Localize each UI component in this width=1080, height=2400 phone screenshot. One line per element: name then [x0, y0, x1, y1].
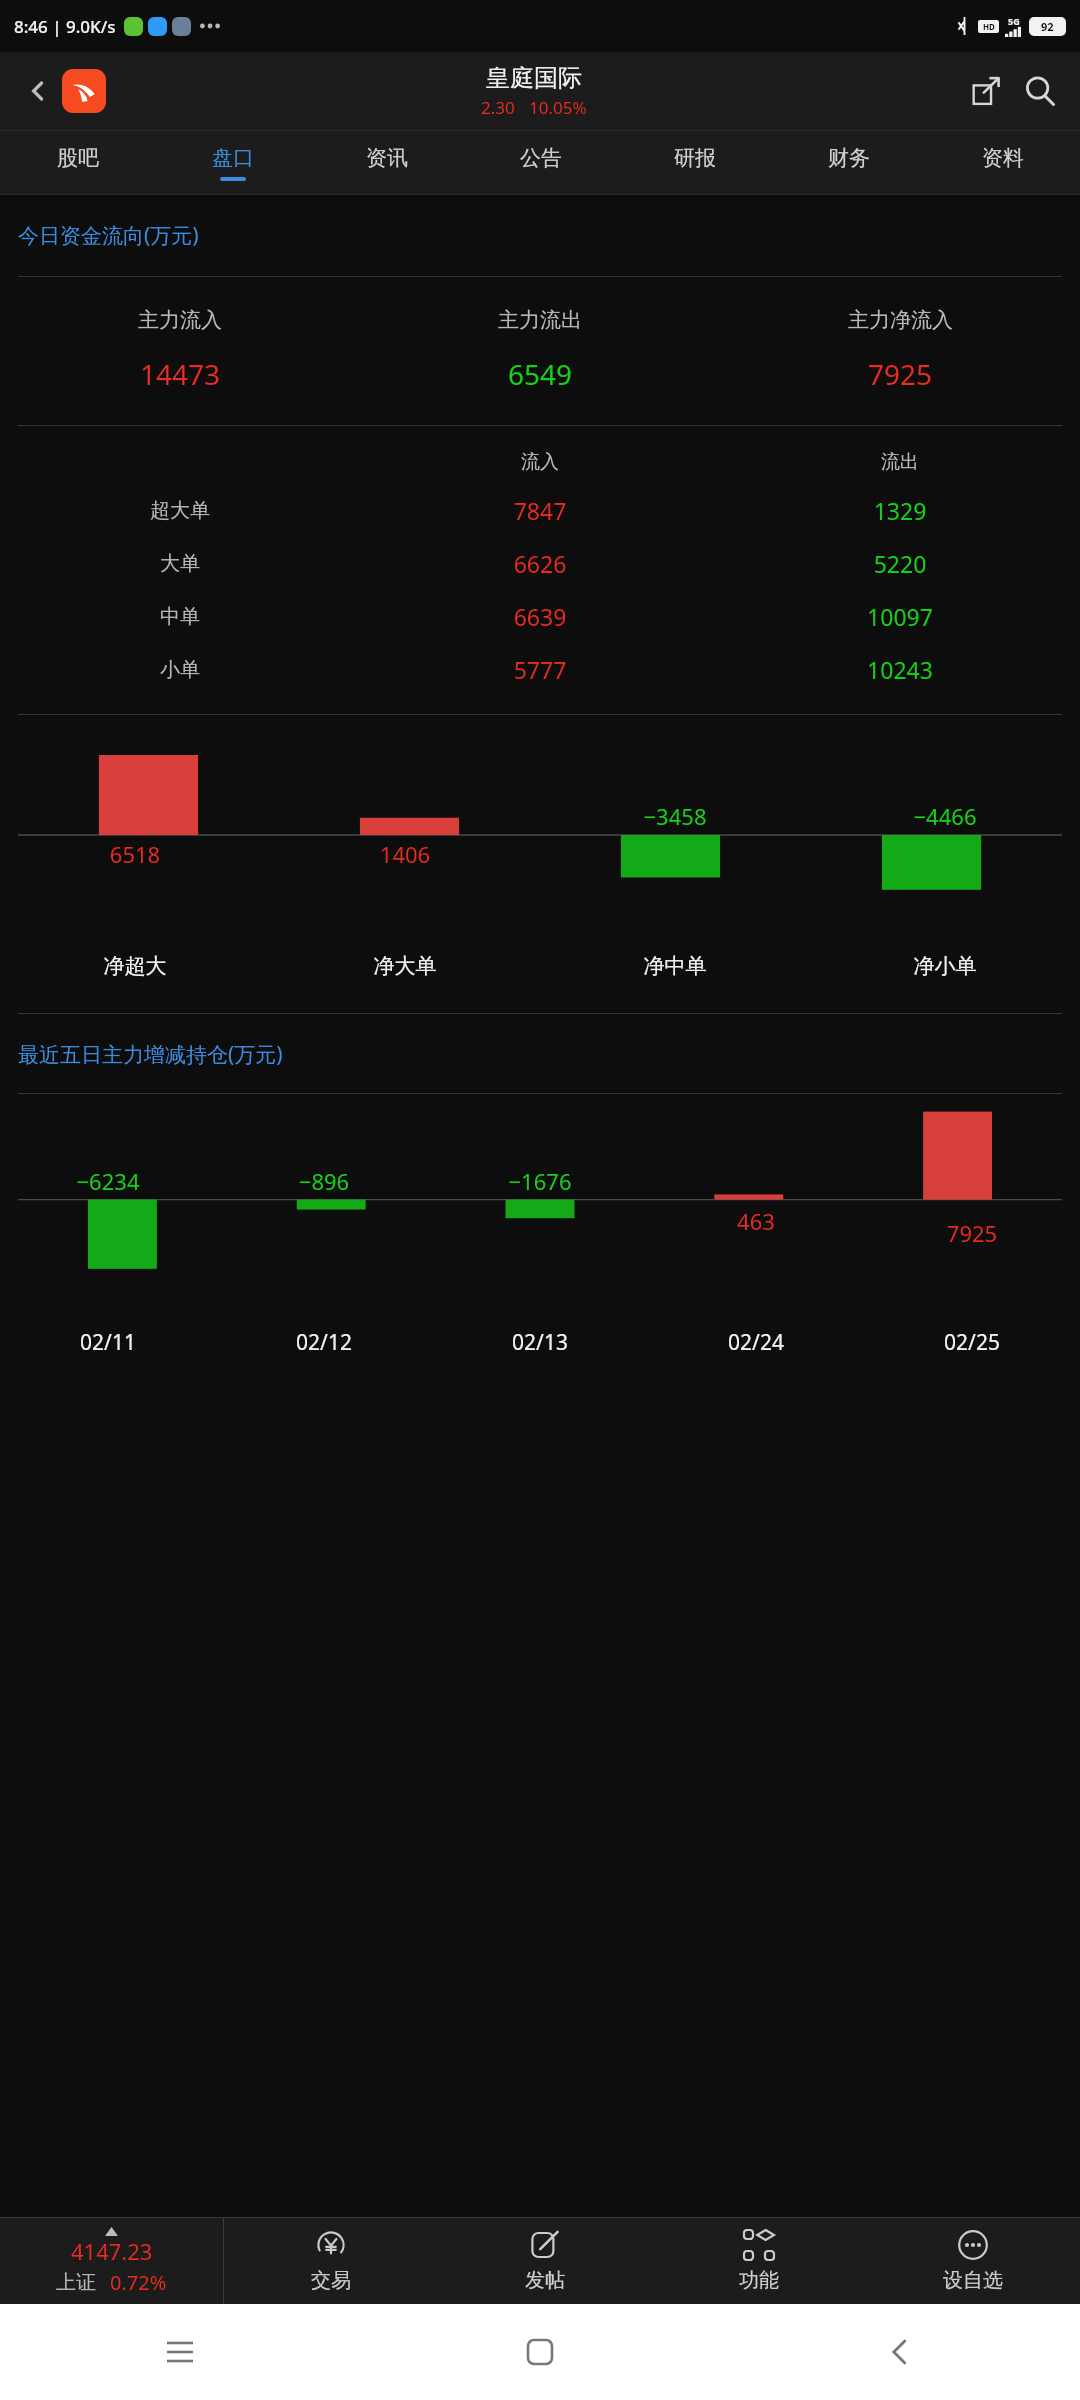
staticText: −896	[216, 1166, 432, 1196]
staticText: 中单	[0, 604, 360, 629]
staticText: 主力净流入	[848, 307, 953, 333]
staticText: 1329	[720, 495, 1080, 526]
staticText: 6626	[360, 548, 720, 579]
staticText: 7925	[864, 1218, 1080, 1248]
button[interactable]: 发帖	[438, 2218, 652, 2304]
staticText: 设自选	[943, 2268, 1003, 2293]
staticText: 研报	[674, 145, 716, 171]
staticText: 超大单	[0, 498, 360, 523]
staticText: 10097	[720, 601, 1080, 632]
staticText: 净超大	[0, 953, 270, 979]
staticText: 流出	[720, 450, 1080, 474]
staticText: 净中单	[540, 953, 810, 979]
staticText: 7925	[868, 355, 933, 393]
staticText: 10.05%	[529, 96, 587, 119]
button[interactable]: 财务	[772, 131, 926, 194]
staticText: HD	[983, 21, 995, 32]
button[interactable]: 交易	[224, 2218, 438, 2304]
button[interactable]: App logo	[62, 69, 106, 113]
staticText: 10243	[720, 654, 1080, 685]
staticText: 6518	[0, 839, 270, 869]
staticText: 功能	[739, 2268, 779, 2293]
staticText: 主力流出	[498, 307, 582, 333]
staticText: 财务	[828, 145, 870, 171]
staticText: −4466	[810, 801, 1080, 831]
button[interactable]: 公告	[464, 131, 618, 194]
button[interactable]: 盘口	[155, 131, 310, 194]
staticText: 4147.23	[71, 2236, 153, 2266]
staticText: 5220	[720, 548, 1080, 579]
staticText: 主力流入	[138, 307, 222, 333]
staticText: 盘口	[212, 145, 254, 171]
staticText: 0.72%	[110, 2269, 167, 2296]
staticText: 8:46 | 9.0K/s	[14, 15, 116, 38]
staticText: 7847	[360, 495, 720, 526]
staticText: 资讯	[366, 145, 408, 171]
button[interactable]: 功能	[652, 2218, 866, 2304]
staticText: 公告	[520, 145, 562, 171]
staticText: 02/25	[864, 1328, 1080, 1357]
button[interactable]: 研报	[618, 131, 772, 194]
button[interactable]: Back	[720, 2304, 1080, 2400]
staticText: 5777	[360, 654, 720, 685]
staticText: 02/12	[216, 1328, 432, 1357]
button[interactable]: 4147.23	[0, 2218, 223, 2304]
staticText: 股吧	[57, 145, 99, 171]
staticText: 92	[1041, 19, 1054, 34]
staticText: 大单	[0, 551, 360, 576]
staticText: 净大单	[270, 953, 540, 979]
staticText: 6549	[508, 355, 573, 393]
button[interactable]: 股吧	[0, 131, 155, 194]
staticText: 14473	[140, 355, 221, 393]
staticText: 1406	[270, 839, 540, 869]
staticText: 463	[648, 1206, 864, 1236]
staticText: 6639	[360, 601, 720, 632]
staticText: 02/11	[0, 1328, 216, 1357]
staticText: −6234	[0, 1166, 216, 1196]
staticText: 小单	[0, 657, 360, 682]
button[interactable]: Search	[1016, 67, 1064, 115]
button[interactable]: Back	[16, 69, 60, 113]
staticText: −3458	[540, 801, 810, 831]
button[interactable]: Recents	[0, 2304, 360, 2400]
button[interactable]: 资讯	[310, 131, 464, 194]
staticText: 发帖	[525, 2268, 565, 2293]
staticText: 上证	[56, 2270, 96, 2295]
staticText: 02/24	[648, 1328, 864, 1357]
staticText: 2.30	[481, 96, 515, 119]
button[interactable]: 资料	[926, 131, 1080, 194]
staticText: 最近五日主力增减持仓(万元)	[18, 1040, 283, 1069]
button[interactable]: 设自选	[866, 2218, 1080, 2304]
staticText: 流入	[360, 450, 720, 474]
button[interactable]: Home	[360, 2304, 720, 2400]
staticText: 02/13	[432, 1328, 648, 1357]
staticText: 资料	[982, 145, 1024, 171]
staticText: 5G	[1008, 15, 1020, 27]
button[interactable]: Share	[962, 67, 1010, 115]
staticText: 皇庭国际	[486, 63, 582, 93]
staticText: −1676	[432, 1166, 648, 1196]
staticText: 净小单	[810, 953, 1080, 979]
staticText: 今日资金流向(万元)	[18, 221, 199, 250]
staticText: 交易	[311, 2268, 351, 2293]
